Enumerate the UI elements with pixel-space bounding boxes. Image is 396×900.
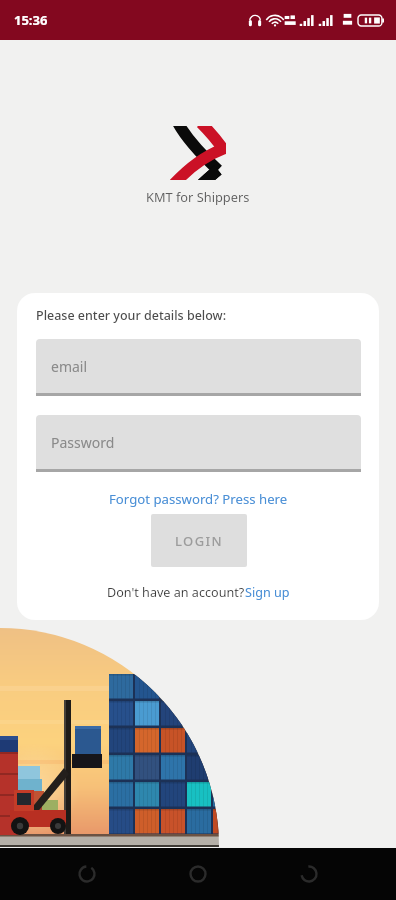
staticText: email: [51, 357, 88, 376]
button[interactable]: Password: [36, 415, 361, 472]
button[interactable]: Home: [174, 850, 222, 898]
button[interactable]: Recent apps: [63, 850, 111, 898]
button[interactable]: Forgot password? Press here: [109, 490, 288, 508]
staticText: LOGIN: [175, 532, 224, 550]
staticText: Password: [51, 433, 115, 452]
staticText: KMT for Shippers: [146, 188, 250, 205]
staticText: 15:36: [14, 11, 48, 29]
button[interactable]: Back: [285, 850, 333, 898]
staticText: Please enter your details below:: [36, 307, 227, 324]
button[interactable]: LOGIN: [151, 514, 247, 567]
button[interactable]: email: [36, 339, 361, 396]
button[interactable]: Sign up: [245, 584, 290, 601]
staticText: Don't have an account?: [107, 584, 245, 601]
